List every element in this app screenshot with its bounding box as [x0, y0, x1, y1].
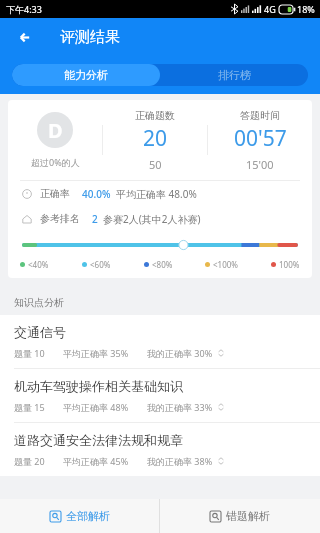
button[interactable]: 交通信号	[0, 315, 320, 368]
staticText: 4G	[264, 3, 276, 15]
button[interactable]: 机动车驾驶操作相关基础知识	[0, 369, 320, 422]
button[interactable]: Back	[8, 22, 38, 52]
staticText: 18%	[297, 3, 315, 15]
staticText: 错题解析	[226, 509, 270, 523]
staticText: 题量 10	[14, 347, 45, 359]
staticText: 00'57	[234, 124, 287, 153]
button[interactable]: 全部解析	[0, 499, 159, 533]
staticText: 20	[143, 124, 168, 153]
staticText: 平均正确率 35%	[63, 347, 129, 359]
staticText: <40%	[28, 259, 49, 270]
staticText: 我的正确率 38%	[147, 455, 213, 467]
staticText: 50	[149, 157, 162, 172]
staticText: 2	[92, 212, 98, 226]
staticText: 平均正确率 48.0%	[116, 187, 197, 201]
staticText: 知识点分析	[14, 296, 64, 309]
staticText: 平均正确率 45%	[63, 455, 129, 467]
staticText: 题量 15	[14, 401, 45, 413]
staticText: 参考排名	[40, 212, 80, 225]
staticText: 全部解析	[66, 509, 110, 523]
staticText: 我的正确率 30%	[147, 347, 213, 359]
staticText: <60%	[90, 259, 111, 270]
button[interactable]: 排行榜	[160, 64, 308, 86]
staticText: 15'00	[246, 157, 274, 172]
staticText: 参赛2人(其中2人补赛)	[103, 212, 201, 226]
staticText: 下午4:33	[6, 3, 42, 15]
staticText: 答题时间	[240, 109, 280, 122]
staticText: 正确率	[40, 187, 70, 200]
staticText: 能力分析	[64, 68, 108, 82]
staticText: 交通信号	[14, 324, 66, 340]
staticText: 道路交通安全法律法规和规章	[14, 432, 183, 448]
staticText: 平均正确率 48%	[63, 401, 129, 413]
staticText: 评测结果	[60, 28, 120, 47]
staticText: <100%	[213, 259, 238, 270]
button[interactable]: 错题解析	[160, 499, 320, 533]
button[interactable]: 道路交通安全法律法规和规章	[0, 423, 320, 476]
staticText: <80%	[152, 259, 173, 270]
staticText: 100%	[279, 259, 300, 270]
staticText: D	[48, 117, 63, 144]
staticText: 排行榜	[218, 68, 251, 82]
staticText: 40.0%	[82, 187, 111, 201]
staticText: 我的正确率 33%	[147, 401, 213, 413]
staticText: 超过0%的人	[31, 156, 80, 168]
staticText: 正确题数	[135, 109, 175, 122]
staticText: 题量 20	[14, 455, 45, 467]
button[interactable]: 能力分析	[12, 64, 160, 86]
staticText: 机动车驾驶操作相关基础知识	[14, 378, 183, 394]
